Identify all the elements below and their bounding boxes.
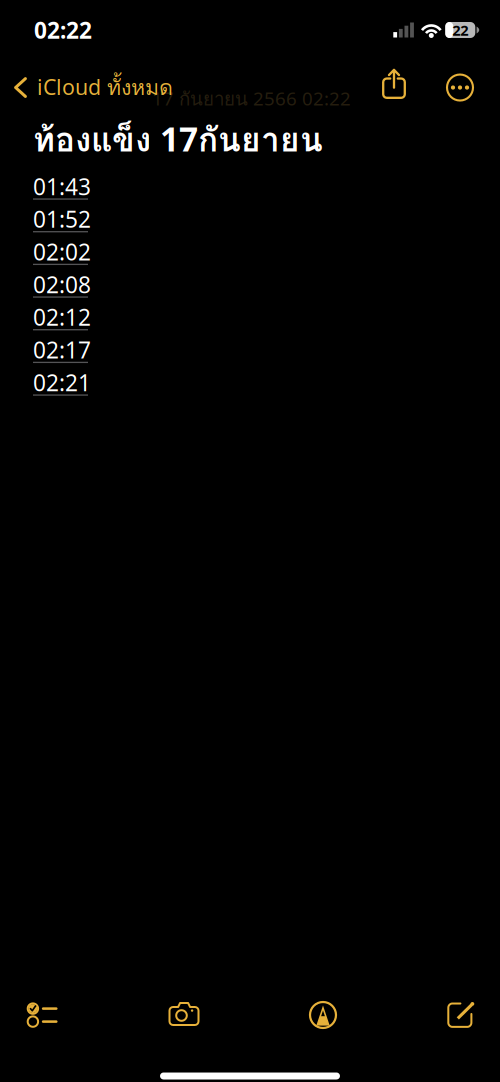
staticText: 02:22	[34, 15, 92, 45]
staticText: 01:52	[33, 204, 91, 234]
staticText: 17 กันยายน 2566 02:22	[152, 84, 351, 113]
button[interactable]: iCloud ทั้งหมด	[0, 65, 183, 110]
button[interactable]: Checklist	[0, 1002, 84, 1046]
staticText: 22	[452, 20, 468, 40]
staticText: 02:21	[33, 367, 91, 397]
button[interactable]: Camera	[142, 1002, 226, 1046]
button[interactable]: Share	[372, 61, 416, 113]
staticText: iCloud ทั้งหมด	[37, 71, 173, 104]
staticText: 02:08	[33, 269, 91, 299]
staticText: ท้องแข็ง 17กันยายน	[33, 114, 323, 165]
staticText: 02:02	[33, 237, 91, 267]
button[interactable]: Markup	[281, 1002, 365, 1046]
button[interactable]: More	[438, 65, 482, 109]
button[interactable]: New Note	[418, 1002, 500, 1046]
staticText: 02:12	[33, 302, 91, 332]
staticText: 01:43	[33, 171, 91, 201]
staticText: 02:17	[33, 335, 91, 365]
